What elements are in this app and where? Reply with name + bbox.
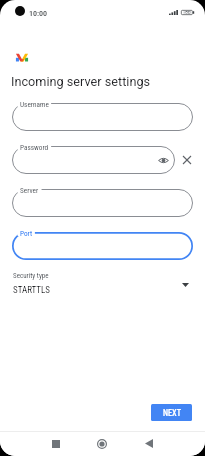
button[interactable]: Back [131,431,167,456]
button[interactable]: Password [12,146,175,174]
staticText: Server [20,186,39,194]
button[interactable]: Show password [157,154,170,167]
button[interactable]: Server [12,189,193,217]
staticText: Password [20,143,49,151]
button[interactable]: NEXT [151,404,192,421]
staticText: 10:00 [29,9,48,18]
button[interactable]: Username [12,103,193,131]
staticText: Incoming server settings [11,74,151,89]
button[interactable]: Clear password [180,153,194,167]
staticText: NEXT [163,408,181,418]
staticText: Security type [13,272,49,280]
button[interactable]: Port [12,232,193,260]
button[interactable]: Recent apps [38,431,74,456]
button[interactable]: Home [84,431,120,456]
button[interactable]: Security type [0,266,205,300]
staticText: STARTTLS [13,285,51,296]
staticText: Port [20,229,33,237]
staticText: Username [20,100,49,108]
